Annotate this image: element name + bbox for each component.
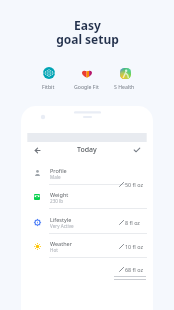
button[interactable]: Fitbit — [26, 67, 70, 90]
button[interactable]: 10 fl oz — [119, 243, 143, 250]
button[interactable]: S Health — [102, 67, 146, 90]
staticText: Very Active — [50, 223, 74, 229]
button[interactable]: Back — [29, 142, 45, 158]
staticText: 230 lb — [50, 198, 64, 204]
button[interactable]: Lifestyle — [21, 209, 153, 234]
staticText: 50 fl oz — [125, 181, 143, 188]
staticText: Today — [77, 145, 97, 155]
button[interactable]: 68 fl oz — [119, 266, 143, 273]
staticText: Google Fit — [74, 83, 99, 90]
staticText: 68 fl oz — [125, 266, 143, 273]
staticText: Easy goal setup — [56, 17, 119, 48]
button[interactable]: Weight — [21, 184, 153, 209]
button[interactable]: Profile — [21, 160, 153, 185]
staticText: Lifestyle — [50, 216, 72, 223]
staticText: Hot — [50, 247, 58, 253]
staticText: S Health — [114, 83, 135, 90]
button[interactable]: Done — [129, 142, 145, 158]
staticText: Profile — [50, 167, 67, 174]
button[interactable]: Weather — [21, 233, 153, 258]
staticText: Weight — [50, 191, 69, 198]
staticText: Weather — [50, 240, 72, 247]
button[interactable]: 50 fl oz — [119, 181, 143, 188]
button[interactable]: Google Fit — [64, 67, 108, 90]
staticText: Male — [50, 174, 61, 180]
staticText: 10 fl oz — [125, 243, 143, 250]
staticText: Fitbit — [42, 83, 55, 90]
button[interactable]: 8 fl oz — [119, 219, 140, 226]
staticText: 8 fl oz — [125, 219, 140, 226]
